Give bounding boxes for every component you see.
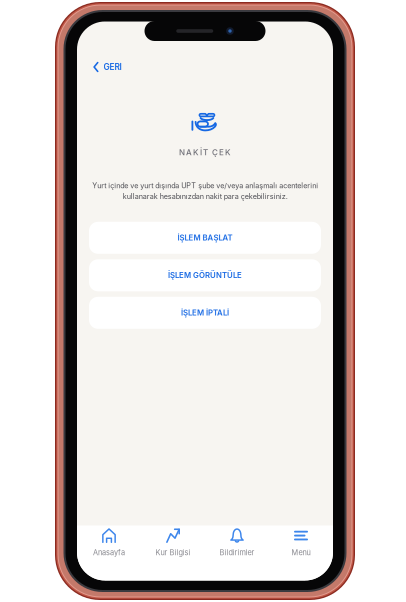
staticText: Kur Bilgisi [155, 548, 190, 557]
staticText: İŞLEM GÖRÜNTÜLE [168, 271, 242, 280]
button[interactable]: İŞLEM GÖRÜNTÜLE [89, 259, 321, 291]
button[interactable]: İŞLEM BAŞLAT [89, 222, 321, 254]
button[interactable]: GERİ [93, 56, 127, 77]
staticText: İŞLEM İPTALİ [181, 308, 229, 317]
button[interactable]: Bildirimler [205, 525, 269, 559]
button[interactable]: Kur Bilgisi [141, 525, 205, 559]
staticText: Menü [291, 548, 310, 557]
staticText: Bildirimler [219, 548, 254, 557]
staticText: Anasayfa [93, 548, 125, 557]
staticText: Yurt içinde ve yurt dışında UPT şube ve/… [92, 181, 318, 201]
button[interactable]: Menü [269, 525, 333, 559]
staticText: İŞLEM BAŞLAT [177, 233, 232, 242]
staticText: N A K İ T Ç E K [179, 147, 231, 157]
staticText: GERİ [103, 62, 121, 72]
button[interactable]: İŞLEM İPTALİ [89, 297, 321, 329]
button[interactable]: Anasayfa [77, 525, 141, 559]
